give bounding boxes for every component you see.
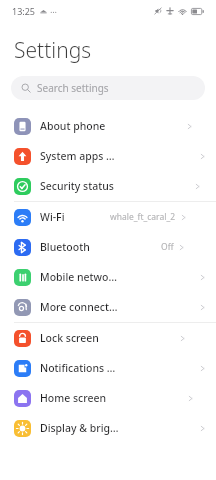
- other: More connectivity options: [14, 299, 31, 316]
- other: Home screen: [14, 390, 31, 407]
- staticText: whale_ft_caral_2: [110, 211, 176, 223]
- staticText: 13:25: [12, 5, 36, 17]
- other: About phone: [14, 118, 31, 135]
- staticText: Home screen: [40, 391, 107, 405]
- staticText: Security status: [40, 179, 114, 193]
- staticText: Off: [161, 241, 174, 253]
- button[interactable]: Wi-Fi: [0, 202, 216, 232]
- other: Bluetooth: [14, 239, 31, 256]
- button[interactable]: Bluetooth: [0, 232, 216, 262]
- staticText: More connectivity options: [40, 300, 119, 314]
- button[interactable]: Lock screen: [0, 323, 216, 353]
- button[interactable]: System apps updater: [0, 141, 216, 171]
- button[interactable]: Display and brightness: [0, 413, 216, 443]
- staticText: Display & brightness: [40, 421, 119, 435]
- button[interactable]: Mobile networks: [0, 262, 216, 292]
- button[interactable]: Security status: [0, 171, 216, 201]
- staticText: Mobile networks: [40, 270, 119, 284]
- other: Lock screen: [14, 330, 31, 347]
- button[interactable]: More connectivity options: [0, 292, 216, 322]
- other: Display and brightness: [14, 420, 31, 437]
- button[interactable]: Notifications and status bar: [0, 353, 216, 383]
- staticText: System apps updater: [40, 149, 119, 163]
- other: Notifications and status bar: [14, 360, 31, 377]
- staticText: Lock screen: [40, 331, 99, 345]
- staticText: Search settings: [37, 81, 109, 95]
- staticText: Settings: [14, 36, 92, 65]
- button[interactable]: About phone: [0, 111, 216, 141]
- staticText: About phone: [40, 119, 106, 133]
- staticText: Notifications & status bar: [40, 361, 119, 375]
- other: System apps updater: [14, 148, 31, 165]
- other: Wi-Fi: [14, 209, 31, 226]
- button[interactable]: Home screen: [0, 383, 216, 413]
- staticText: Wi-Fi: [40, 210, 65, 224]
- other: Security status: [14, 178, 31, 195]
- other: Mobile networks: [14, 269, 31, 286]
- staticText: Bluetooth: [40, 240, 90, 254]
- button[interactable]: Search settings: [11, 76, 205, 100]
